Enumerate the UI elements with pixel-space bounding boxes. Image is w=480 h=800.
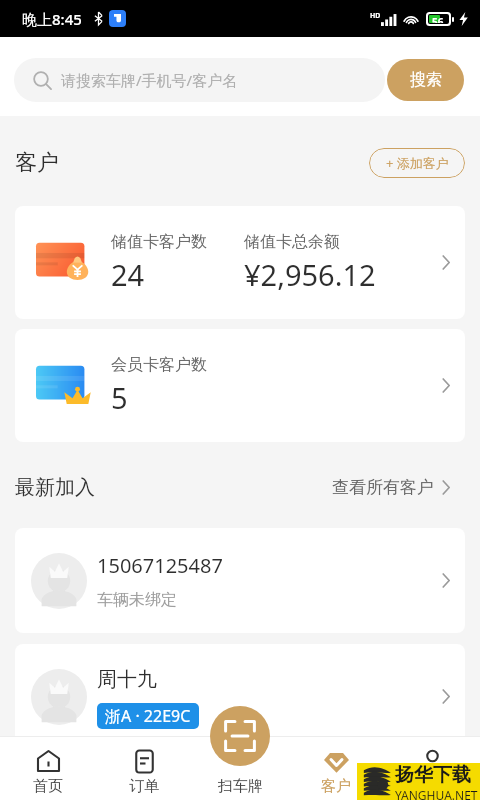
staticText: 扬华下载 [395, 763, 471, 787]
staticText: 24 [111, 255, 145, 294]
staticText: 搜索 [410, 70, 442, 90]
button[interactable]: 订单 [96, 736, 192, 800]
staticText: 我的 [417, 777, 447, 796]
button[interactable]: 会员卡客户数 [15, 329, 465, 442]
staticText: 客户 [321, 777, 351, 796]
staticText: 首页 [33, 777, 63, 796]
staticText: 请搜索车牌/手机号/客户名 [61, 70, 238, 90]
button[interactable]: 搜索 [387, 59, 464, 101]
staticText: 浙A · 22E9C [105, 705, 191, 727]
staticText: 会员卡客户数 [111, 355, 207, 375]
staticText: ¥2,956.12 [244, 255, 376, 294]
staticText: 储值卡总余额 [244, 232, 340, 252]
staticText: 订单 [129, 777, 159, 796]
button[interactable]: 请搜索车牌/手机号/客户名 [14, 58, 385, 102]
staticText: 扫车牌 [218, 777, 263, 796]
staticText: 56 [432, 15, 444, 23]
button[interactable]: 客户 [288, 736, 384, 800]
button[interactable]: 15067125487 [15, 528, 465, 633]
button[interactable]: 扫车牌 [192, 736, 288, 800]
staticText: 最新加入 [15, 475, 95, 500]
button[interactable]: + 添加客户 [369, 148, 465, 178]
button[interactable]: 储值卡客户数 [15, 206, 465, 319]
staticText: 15067125487 [97, 552, 223, 579]
staticText: HD [370, 11, 381, 21]
staticText: + 添加客户 [386, 154, 449, 172]
staticText: YANGHUA.NET [395, 787, 478, 800]
button[interactable]: 查看所有客户 [332, 477, 450, 498]
staticText: 储值卡客户数 [111, 232, 207, 252]
button[interactable]: 我的 [384, 736, 480, 800]
button[interactable]: 扫车牌 [210, 706, 270, 766]
button[interactable]: 首页 [0, 736, 96, 800]
staticText: 周十九 [97, 667, 157, 692]
staticText: 查看所有客户 [332, 477, 434, 498]
staticText: 车辆未绑定 [97, 590, 177, 610]
staticText: 晚上8:45 [22, 9, 82, 29]
staticText: 5 [111, 378, 128, 417]
button[interactable]: 周十九 [15, 644, 465, 749]
staticText: 客户 [15, 149, 59, 177]
